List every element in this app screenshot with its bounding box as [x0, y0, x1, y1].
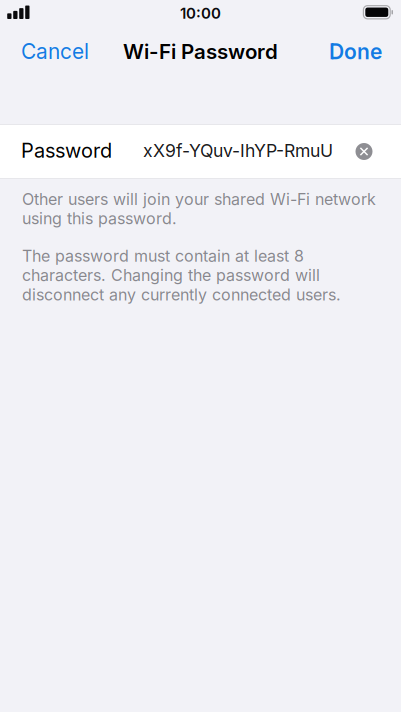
button[interactable]: Clear text [350, 125, 378, 178]
staticText: Done [329, 39, 382, 64]
button[interactable]: Cancel [0, 26, 110, 76]
staticText: xX9f-YQuv-IhYP-RmuU [143, 140, 333, 161]
staticText: The password must contain at least 8 cha… [22, 246, 341, 304]
button[interactable]: Done [310, 26, 401, 76]
staticText: 10:00 [180, 4, 221, 22]
staticText: Cancel [21, 39, 89, 64]
button[interactable]: Password [0, 125, 350, 178]
staticText: Other users will join your shared Wi-Fi … [22, 189, 376, 228]
staticText: Password [21, 138, 112, 163]
staticText: Wi-Fi Password [123, 39, 278, 64]
